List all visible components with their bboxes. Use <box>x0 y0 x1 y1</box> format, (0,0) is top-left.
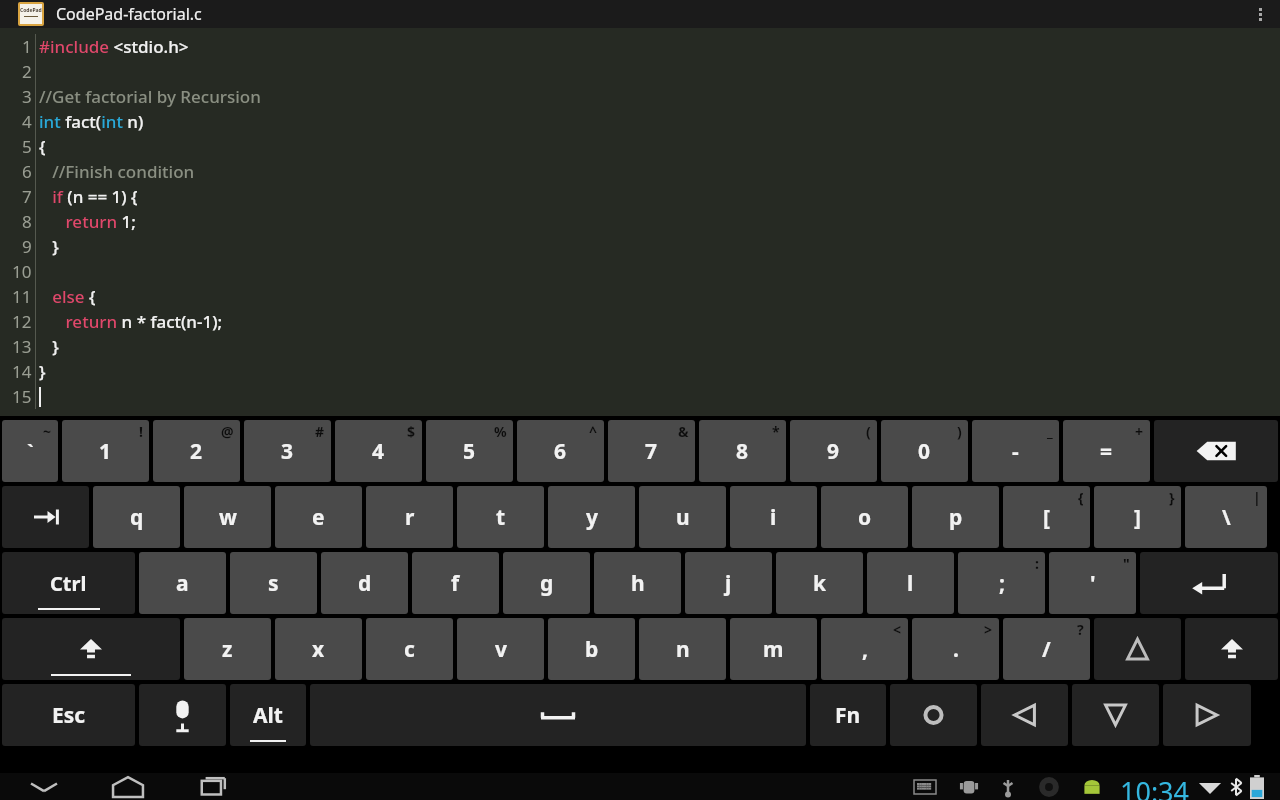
button[interactable]: 5 <box>426 420 513 482</box>
button[interactable]: , <box>821 618 908 680</box>
staticText: u <box>676 503 690 532</box>
button[interactable]: d <box>321 552 408 614</box>
button[interactable]: Menu <box>890 684 977 746</box>
staticText: 12 <box>12 310 32 333</box>
button[interactable]: ; <box>958 552 1045 614</box>
button[interactable]: Enter <box>1140 552 1278 614</box>
button[interactable]: Voice input <box>139 684 226 746</box>
button[interactable]: Shift right <box>1185 618 1278 680</box>
button[interactable]: v <box>457 618 544 680</box>
button[interactable]: o <box>821 486 908 548</box>
staticText: 13 <box>12 335 32 358</box>
button[interactable]: n <box>639 618 726 680</box>
button[interactable]: - <box>972 420 1059 482</box>
button[interactable]: 6 <box>517 420 604 482</box>
button[interactable]: g <box>503 552 590 614</box>
staticText: 2 <box>190 437 203 466</box>
button[interactable]: ] <box>1094 486 1181 548</box>
button[interactable]: Ctrl <box>2 552 135 614</box>
staticText: h <box>631 569 645 598</box>
button[interactable]: c <box>366 618 453 680</box>
button[interactable]: Tab <box>2 486 89 548</box>
button[interactable]: [ <box>1003 486 1090 548</box>
button[interactable]: z <box>184 618 271 680</box>
button[interactable]: = <box>1063 420 1150 482</box>
staticText: k <box>813 569 827 598</box>
button[interactable]: y <box>548 486 635 548</box>
button[interactable]: Backspace <box>1154 420 1278 482</box>
button[interactable]: a <box>139 552 226 614</box>
button[interactable]: b <box>548 618 635 680</box>
staticText: o <box>858 503 872 532</box>
button[interactable]: x <box>275 618 362 680</box>
button[interactable]: \ <box>1185 486 1267 548</box>
button[interactable]: l <box>867 552 954 614</box>
staticText: //Finish condition <box>39 160 195 183</box>
button[interactable]: 8 <box>699 420 786 482</box>
button[interactable]: t <box>457 486 544 548</box>
button[interactable]: m <box>730 618 817 680</box>
button[interactable]: 9 <box>790 420 877 482</box>
button[interactable]: q <box>93 486 180 548</box>
button[interactable]: s <box>230 552 317 614</box>
staticText: 9 <box>827 437 840 466</box>
button[interactable]: Backquote <box>2 420 58 482</box>
button[interactable]: Esc <box>2 684 135 746</box>
staticText: 10:34 <box>1120 773 1190 800</box>
staticText: , <box>862 635 868 664</box>
staticText: if (n == 1) { <box>39 185 138 208</box>
staticText: //Get factorial by Recursion <box>39 85 261 108</box>
button[interactable]: w <box>184 486 271 548</box>
staticText: 6 <box>22 160 32 183</box>
staticText: } <box>39 360 46 383</box>
staticText: p <box>949 503 963 532</box>
button[interactable]: Space <box>310 684 806 746</box>
staticText: | <box>1253 488 1261 507</box>
button[interactable]: Recent apps <box>184 773 240 800</box>
button[interactable]: j <box>685 552 772 614</box>
staticText: z <box>222 635 233 664</box>
staticText: % <box>494 422 507 441</box>
button[interactable]: Down <box>1072 684 1159 746</box>
staticText: return 1; <box>39 210 136 233</box>
button[interactable]: Right <box>1163 684 1251 746</box>
button[interactable]: p <box>912 486 999 548</box>
button[interactable]: . <box>912 618 999 680</box>
staticText: j <box>725 569 732 598</box>
button[interactable]: Hide keyboard <box>16 773 72 800</box>
staticText: \ <box>1222 503 1231 532</box>
button[interactable]: e <box>275 486 362 548</box>
staticText: { <box>39 135 46 158</box>
button[interactable]: 0 <box>881 420 968 482</box>
button[interactable]: r <box>366 486 453 548</box>
button[interactable]: Left <box>981 684 1068 746</box>
staticText: ^ <box>589 422 598 441</box>
button[interactable]: Up <box>1094 618 1181 680</box>
button[interactable]: 7 <box>608 420 695 482</box>
button[interactable]: f <box>412 552 499 614</box>
staticText: e <box>312 503 325 532</box>
staticText: ~ <box>43 422 52 441</box>
button[interactable]: 3 <box>244 420 331 482</box>
button[interactable]: 1 <box>62 420 149 482</box>
button[interactable]: Shift <box>2 618 180 680</box>
button[interactable]: 4 <box>335 420 422 482</box>
button[interactable]: Alt <box>230 684 306 746</box>
button[interactable]: ' <box>1049 552 1136 614</box>
button[interactable]: h <box>594 552 681 614</box>
staticText: < <box>893 620 902 639</box>
staticText: 1 <box>22 35 32 58</box>
button[interactable]: 2 <box>153 420 240 482</box>
button[interactable]: i <box>730 486 817 548</box>
button[interactable]: k <box>776 552 863 614</box>
staticText: ) <box>957 422 962 441</box>
button[interactable]: u <box>639 486 726 548</box>
staticText: CodePad-factorial.c <box>56 3 202 25</box>
button[interactable]: More options <box>1240 0 1280 28</box>
button[interactable]: Home <box>100 773 156 800</box>
button[interactable]: Fn <box>810 684 886 746</box>
button[interactable]: / <box>1003 618 1090 680</box>
staticText: 3 <box>281 437 294 466</box>
staticText: b <box>585 635 599 664</box>
staticText: return n * fact(n-1); <box>39 310 223 333</box>
